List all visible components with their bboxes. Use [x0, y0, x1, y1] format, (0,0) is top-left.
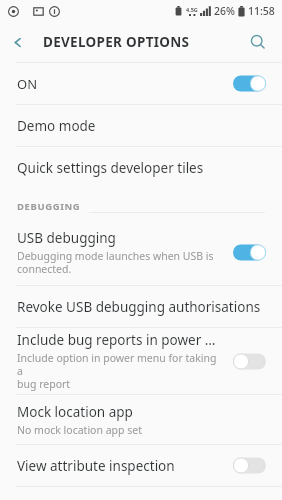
staticText: Include bug reports in power me.. — [17, 331, 223, 349]
button[interactable]: Off — [233, 457, 266, 474]
button[interactable]: View attribute inspection — [0, 445, 282, 486]
staticText: Quick settings developer tiles — [17, 159, 204, 177]
staticText: 4.5G — [186, 6, 198, 13]
button[interactable]: On — [233, 75, 266, 92]
button[interactable]: Back — [0, 24, 36, 60]
button[interactable]: On — [233, 244, 266, 261]
button[interactable]: Off — [233, 353, 266, 370]
staticText: 11:58 — [248, 4, 275, 18]
button[interactable]: Quick settings developer tiles — [0, 147, 282, 188]
staticText: Mock location app — [17, 403, 133, 421]
button[interactable]: USB debugging — [0, 219, 282, 285]
staticText: USB debugging — [17, 229, 116, 247]
button[interactable]: Search — [241, 25, 275, 59]
staticText: DEBUGGING — [17, 200, 81, 213]
staticText: Debugging mode launches when USB is conn… — [17, 249, 214, 276]
staticText: No mock location app set — [17, 423, 142, 437]
staticText: DEVELOPER OPTIONS — [43, 33, 190, 51]
staticText: Revoke USB debugging authorisations — [17, 298, 261, 316]
staticText: Demo mode — [17, 117, 96, 135]
button[interactable]: Include bug reports in power me.. — [0, 328, 282, 394]
button[interactable]: Demo mode — [0, 105, 282, 146]
staticText: ON — [17, 75, 38, 93]
button[interactable]: Mock location app — [0, 395, 282, 444]
staticText: 26% — [214, 4, 235, 18]
staticText: View attribute inspection — [17, 457, 175, 475]
button[interactable]: Revoke USB debugging authorisations — [0, 286, 282, 327]
staticText: Include option in power menu for taking … — [17, 351, 223, 391]
button[interactable]: ON — [0, 63, 282, 104]
